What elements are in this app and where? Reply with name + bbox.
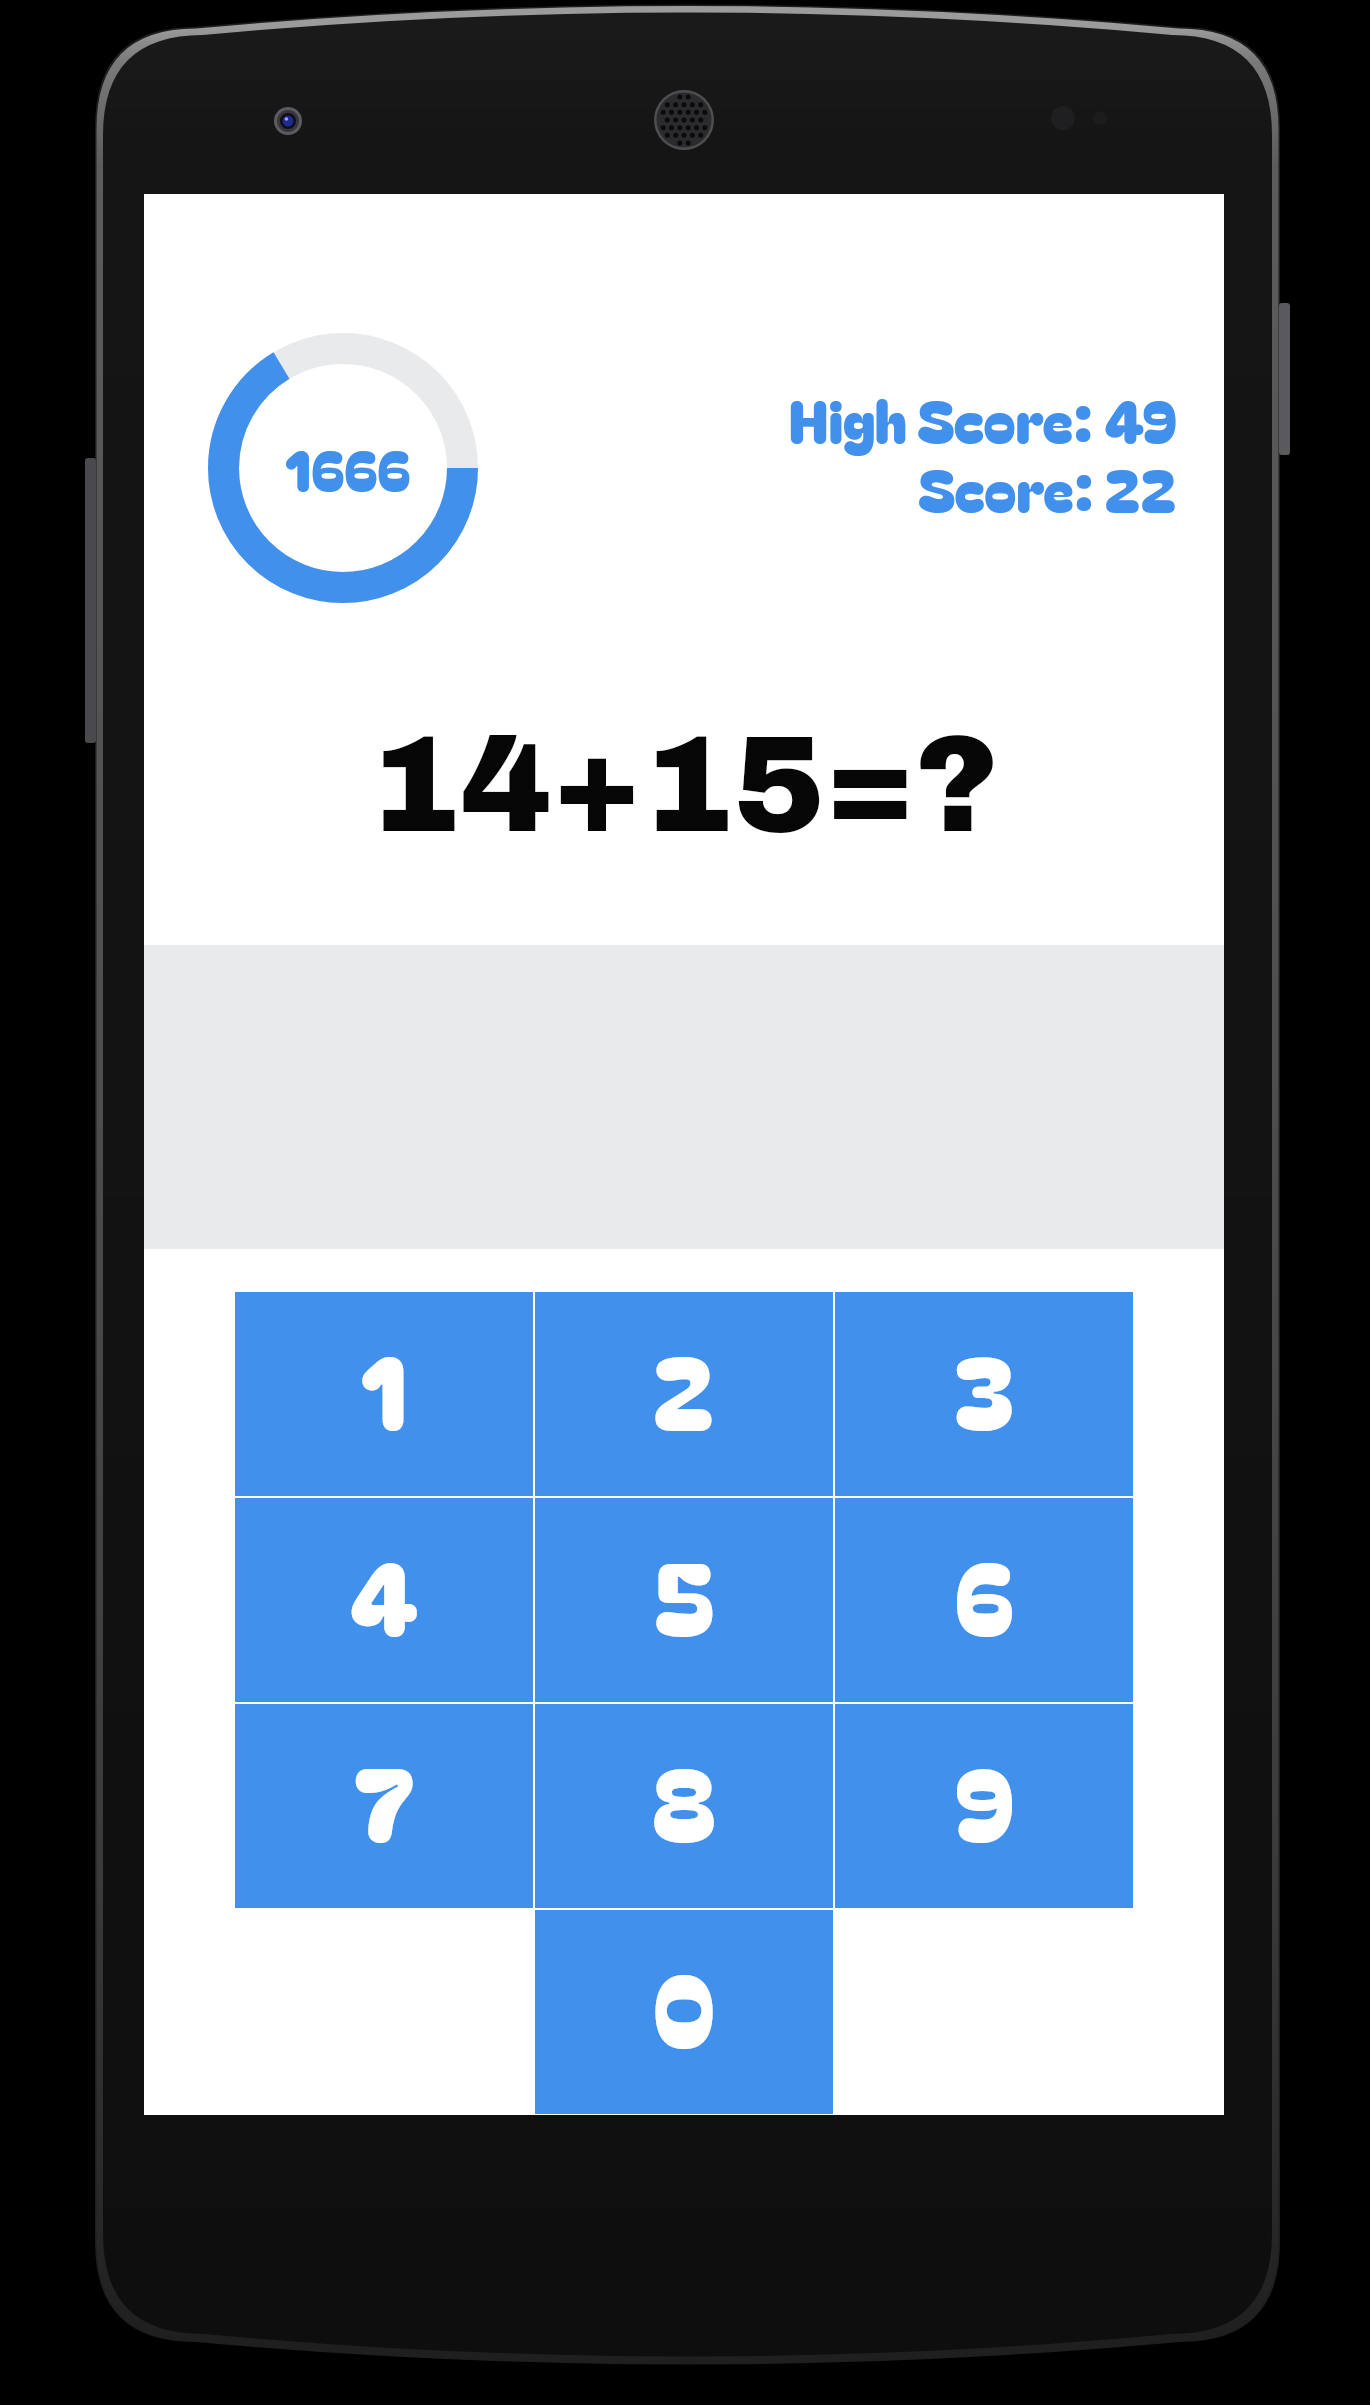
staticText: 4 (349, 1521, 419, 1666)
button[interactable]: 2 (535, 1292, 833, 1496)
button[interactable]: 6 (835, 1498, 1133, 1702)
button[interactable]: 9 (835, 1704, 1133, 1908)
button[interactable]: 4 (235, 1498, 533, 1702)
staticText: 5 (654, 1521, 715, 1666)
button[interactable]: 0 (535, 1910, 833, 2114)
staticText: 1 (361, 1315, 408, 1460)
button[interactable]: 8 (535, 1704, 833, 1908)
staticText: 0 (653, 1933, 716, 2078)
staticText: 8 (652, 1727, 716, 1872)
staticText: 6 (955, 1521, 1014, 1666)
staticText: Score: 22 (918, 446, 1177, 530)
button[interactable]: 3 (835, 1292, 1133, 1496)
staticText: 1666 (285, 427, 411, 508)
staticText: 9 (955, 1727, 1014, 1872)
staticText: 2 (653, 1315, 716, 1460)
staticText: 3 (954, 1315, 1015, 1460)
staticText: 14+15=? (144, 711, 1224, 860)
button[interactable]: 5 (535, 1498, 833, 1702)
button[interactable]: 1 (235, 1292, 533, 1496)
button[interactable]: 7 (235, 1704, 533, 1908)
staticText: 7 (354, 1727, 415, 1872)
other: Countdown timer 1666 (208, 333, 478, 603)
staticText: High Score: 49 (789, 377, 1177, 461)
